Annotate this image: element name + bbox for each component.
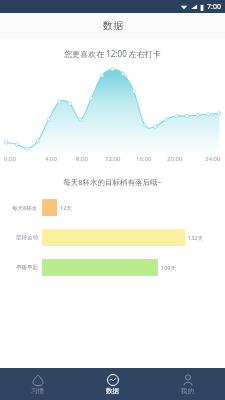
staticText: 132天 [188,234,203,242]
staticText: 每天8杯水 [12,204,38,212]
staticText: 数据 [106,387,119,395]
button[interactable]: 坚持运动 [8,229,217,246]
staticText: 24:00 [205,155,221,163]
button[interactable]: 每天8杯水 [8,199,217,216]
staticText: 习惯 [31,387,44,395]
staticText: 4:00 [45,155,57,163]
staticText: 109天 [161,264,176,272]
button[interactable]: 早睡早起 [8,259,217,276]
staticText: 您更喜欢在 12:00 左右打卡 [0,48,225,59]
staticText: 7:00 [207,2,221,12]
staticText: 20:00 [167,155,183,163]
button[interactable]: 习惯 [0,368,75,400]
staticText: 早睡早起 [16,264,38,271]
button[interactable]: 我的 [150,368,225,400]
staticText: 8:00 [76,155,88,163]
staticText: 数据 [103,19,123,32]
button[interactable]: 数据 [75,368,150,400]
staticText: 16:00 [136,155,152,163]
staticText: 0:00 [4,155,16,163]
staticText: 12:00 [105,155,121,163]
staticText: 12天 [60,204,72,212]
staticText: 我的 [181,387,194,395]
staticText: 每天8杯水的目标稍有落后哦~ [0,177,225,187]
staticText: 坚持运动 [16,234,38,241]
